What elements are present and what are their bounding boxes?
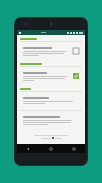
button[interactable]: Back xyxy=(17,144,39,153)
other: Automatic updates xyxy=(73,48,79,54)
other: Enable notifications xyxy=(73,73,79,79)
button[interactable]: Recent apps xyxy=(62,144,85,153)
button[interactable] xyxy=(20,94,82,108)
button[interactable]: Home xyxy=(39,144,62,153)
button[interactable]: Automatic updates xyxy=(20,44,82,60)
button[interactable] xyxy=(20,113,82,129)
button[interactable]: Enable notifications xyxy=(20,69,82,85)
